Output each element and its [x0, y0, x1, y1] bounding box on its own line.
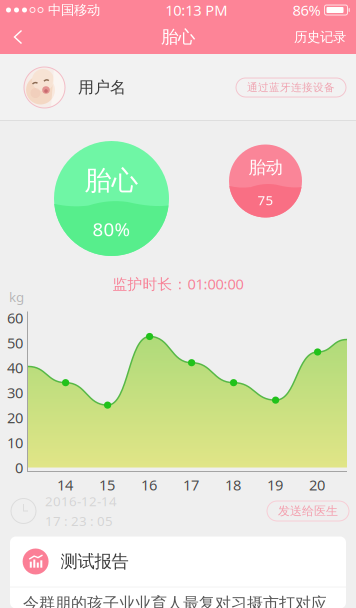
- staticText: 18: [225, 475, 241, 494]
- button[interactable]: 历史记录: [290, 23, 350, 51]
- staticText: 15: [99, 475, 115, 494]
- staticText: 86%: [292, 0, 320, 20]
- staticText: 中国移动: [48, 2, 100, 18]
- staticText: 40: [7, 358, 23, 377]
- staticText: 监护时长：01:00:00: [112, 274, 243, 293]
- staticText: 17 : 23 : 05: [45, 512, 113, 530]
- staticText: 20: [309, 475, 325, 494]
- staticText: 胎心: [161, 26, 195, 48]
- staticText: 50: [7, 333, 23, 352]
- staticText: 胎心: [84, 164, 138, 197]
- staticText: 20: [7, 408, 23, 427]
- staticText: 16: [141, 475, 157, 494]
- staticText: 发送给医生: [278, 504, 338, 518]
- button[interactable]: 测试报告: [10, 536, 346, 608]
- staticText: 通过蓝牙连接设备: [247, 81, 335, 94]
- staticText: 30: [7, 383, 23, 402]
- staticText: 0: [15, 458, 23, 477]
- staticText: 2016-12-14: [45, 492, 117, 510]
- staticText: 历史记录: [294, 29, 346, 45]
- button[interactable]: 通过蓝牙连接设备: [236, 78, 346, 97]
- staticText: 用户名: [78, 78, 126, 97]
- staticText: 今群朋的孩子业业育人最复对习摄市打对应应计: [23, 593, 327, 608]
- staticText: 10: [7, 433, 23, 452]
- staticText: 14: [57, 475, 73, 494]
- staticText: kg: [9, 288, 24, 306]
- button[interactable]: 返回: [6, 20, 32, 53]
- staticText: 胎动: [248, 157, 282, 178]
- staticText: 19: [267, 475, 283, 494]
- staticText: 10:13 PM: [165, 0, 227, 20]
- staticText: 测试报告: [61, 551, 129, 572]
- staticText: 75: [257, 191, 273, 209]
- staticText: 60: [7, 308, 23, 327]
- button[interactable]: 发送给医生: [267, 501, 349, 521]
- staticText: 17: [183, 475, 199, 494]
- staticText: 80%: [92, 217, 130, 241]
